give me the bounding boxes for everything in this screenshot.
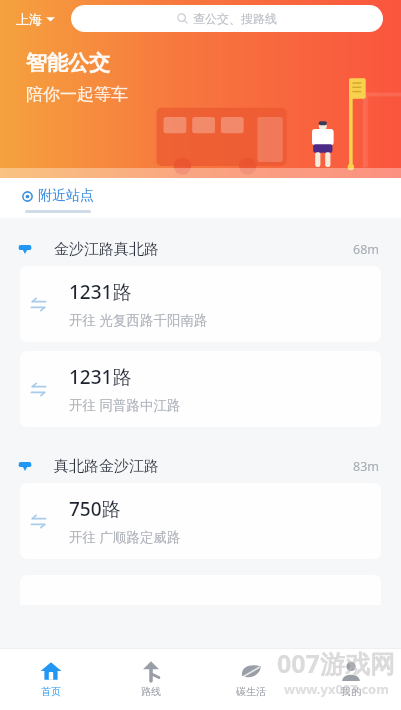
button[interactable]: 750路 [20, 483, 381, 559]
staticText: 007游戏网 [277, 646, 395, 680]
button[interactable]: 附近站点 [18, 178, 98, 213]
staticText: 路线 [141, 685, 161, 698]
staticText: 陪你一起等车 [26, 84, 128, 105]
button[interactable]: 1231路 [20, 266, 381, 342]
button[interactable]: 1231路 [20, 351, 381, 427]
button[interactable]: 碳生活 [201, 648, 301, 710]
button[interactable]: 上海 [14, 7, 57, 31]
staticText: 首页 [41, 685, 61, 698]
button[interactable]: 金沙江路真北路 [0, 232, 401, 266]
staticText: 我的 [341, 685, 361, 698]
button[interactable]: 查公交、搜路线 [71, 5, 383, 32]
staticText: 真北路金沙江路 [54, 457, 159, 476]
staticText: 金沙江路真北路 [54, 240, 159, 259]
button[interactable]: 真北路金沙江路 [0, 449, 401, 483]
staticText: 附近站点 [38, 187, 94, 205]
staticText: 开往 同普路中江路 [69, 396, 181, 414]
button[interactable]: 我的 [301, 648, 401, 710]
staticText: 1231路 [69, 279, 132, 305]
staticText: 1231路 [69, 364, 132, 390]
button[interactable]: 路线 [101, 648, 201, 710]
staticText: 查公交、搜路线 [193, 11, 277, 26]
staticText: 68m [353, 241, 379, 258]
staticText: 智能公交 [26, 50, 110, 76]
staticText: 碳生活 [236, 685, 266, 698]
staticText: 开往 光复西路千阳南路 [69, 311, 208, 329]
staticText: 750路 [69, 496, 121, 522]
staticText: 83m [353, 458, 379, 475]
staticText: 上海 [16, 11, 42, 27]
staticText: www.yx007.com [284, 680, 389, 698]
button[interactable]: 首页 [0, 648, 101, 710]
staticText: 开往 广顺路定威路 [69, 528, 181, 546]
